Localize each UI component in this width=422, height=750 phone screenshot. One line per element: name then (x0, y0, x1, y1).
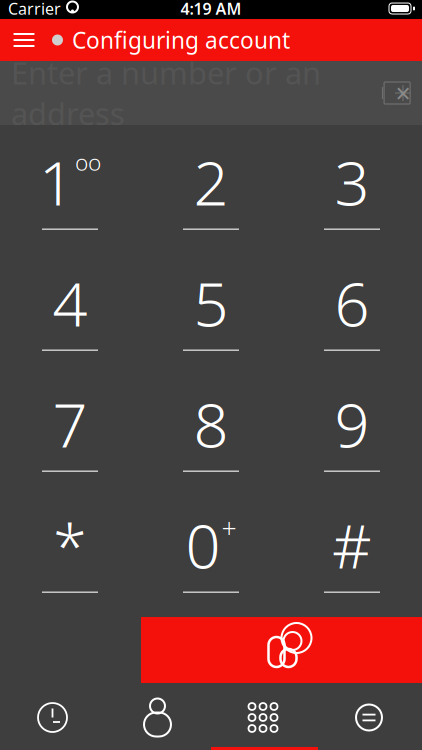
button[interactable]: Call (141, 617, 422, 683)
staticText: 7 (52, 383, 87, 464)
staticText: * (53, 504, 87, 585)
button[interactable]: 3 (281, 125, 422, 246)
button[interactable]: Contacts (105, 685, 210, 749)
button[interactable]: 8 (140, 367, 281, 488)
button[interactable]: Keypad (210, 685, 316, 749)
staticText: Enter a number or an address (11, 52, 321, 134)
staticText: 4 (52, 262, 87, 343)
button[interactable]: * (0, 488, 140, 609)
staticText: 1 (39, 141, 74, 222)
button[interactable]: Messages (316, 685, 422, 749)
staticText: # (332, 504, 372, 585)
button[interactable]: 4 (0, 246, 140, 367)
button[interactable]: 2 (140, 125, 281, 246)
button[interactable]: # (281, 488, 422, 609)
button[interactable]: Menu (2, 19, 46, 61)
staticText: oo (75, 147, 101, 177)
staticText: 6 (334, 262, 369, 343)
staticText: 3 (334, 141, 369, 222)
staticText: 9 (334, 383, 369, 464)
button[interactable]: 0 (140, 488, 281, 609)
button[interactable]: 9 (281, 367, 422, 488)
button[interactable]: Recents (0, 685, 105, 749)
button[interactable]: Delete (370, 71, 422, 115)
staticText: 2 (193, 141, 228, 222)
staticText: Carrier (8, 0, 61, 19)
staticText: 0 (185, 504, 220, 585)
staticText: 4:19 AM (180, 0, 241, 19)
staticText: × (395, 75, 410, 111)
staticText: 5 (193, 262, 228, 343)
staticText: 8 (193, 383, 228, 464)
staticText: + (221, 510, 236, 545)
button[interactable]: 6 (281, 246, 422, 367)
staticText: Configuring account (72, 25, 290, 55)
button[interactable]: 7 (0, 367, 140, 488)
button[interactable]: 1 (0, 125, 140, 246)
button[interactable]: 5 (140, 246, 281, 367)
